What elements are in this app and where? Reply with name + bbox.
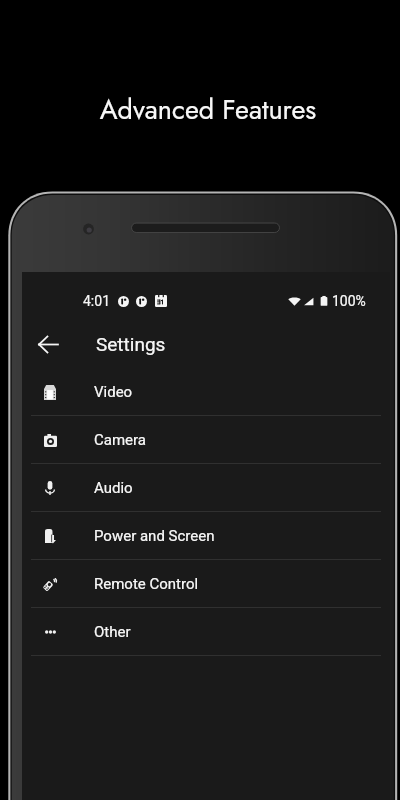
staticText: Advanced Features xyxy=(8,90,400,129)
staticText: Remote Control xyxy=(94,575,199,593)
button[interactable]: Remote Control xyxy=(22,560,390,607)
staticText: Power and Screen xyxy=(94,527,215,545)
staticText: Settings xyxy=(96,333,166,355)
staticText: Video xyxy=(94,383,133,401)
button[interactable]: Power and Screen xyxy=(22,512,390,559)
staticText: Camera xyxy=(94,431,146,449)
button[interactable]: Audio xyxy=(22,464,390,511)
staticText: Audio xyxy=(94,479,133,497)
button[interactable]: Back xyxy=(22,320,74,368)
staticText: 4:01 xyxy=(83,293,110,309)
button[interactable]: Camera xyxy=(22,416,390,463)
staticText: Other xyxy=(94,623,131,641)
staticText: 100% xyxy=(332,293,366,309)
button[interactable]: Video xyxy=(22,368,390,415)
button[interactable]: Other xyxy=(22,608,390,655)
